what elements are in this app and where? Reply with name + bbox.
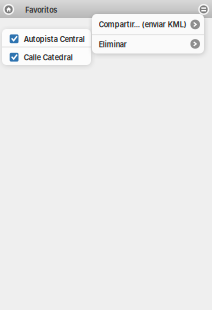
button[interactable]: Compartir... (enviar KML) [92,14,204,34]
staticText: Autopista Central [24,35,85,44]
button[interactable]: Calle Catedral [2,47,91,65]
button[interactable]: Menu [198,4,209,15]
button[interactable]: Home [3,4,14,15]
button[interactable]: Autopista Central [2,29,91,47]
staticText: Favoritos [25,6,57,14]
staticText: Calle Catedral [24,53,73,62]
staticText: Eliminar [99,40,127,49]
button[interactable]: Eliminar [92,35,204,53]
staticText: Compartir... (enviar KML) [99,20,187,29]
